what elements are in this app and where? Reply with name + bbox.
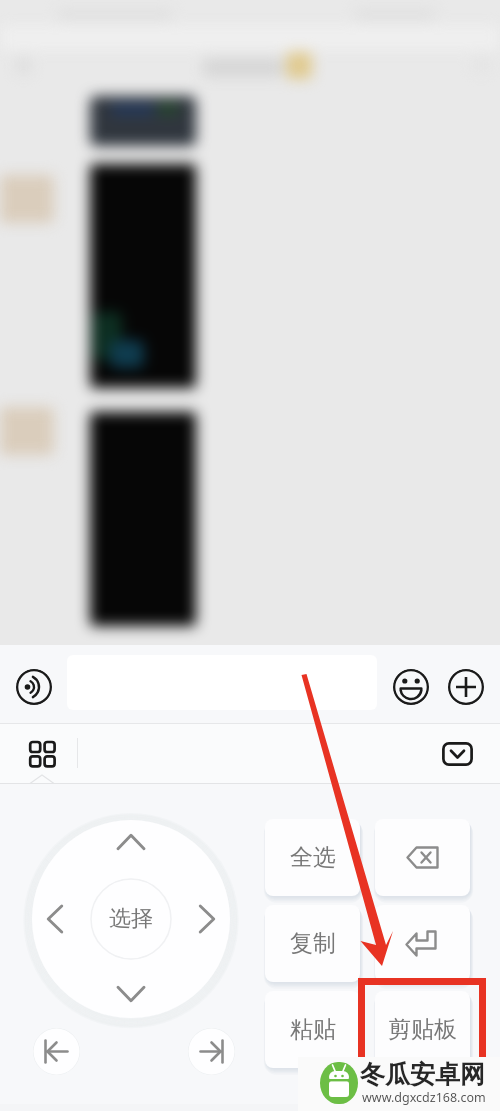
staticText: 全选 (290, 843, 336, 872)
button[interactable]: Jump to end (188, 1028, 235, 1075)
button[interactable] (375, 819, 470, 896)
button[interactable] (67, 655, 377, 710)
button[interactable]: More options (448, 669, 484, 705)
button[interactable]: Keyboard switch (24, 737, 61, 774)
button[interactable]: 复制 (265, 905, 360, 982)
staticText: 选择 (109, 905, 153, 933)
staticText: 剪贴板 (388, 1015, 457, 1044)
button[interactable]: Emoji (393, 669, 429, 705)
staticText: 粘贴 (290, 1015, 336, 1044)
button[interactable] (375, 905, 470, 982)
button[interactable]: Voice input (16, 669, 52, 705)
button[interactable]: 全选 (265, 819, 360, 896)
staticText: 冬瓜安卓网 (360, 1059, 485, 1090)
button[interactable]: Jump to start (33, 1028, 80, 1075)
staticText: www.dgxcdz168.com (362, 1089, 486, 1106)
button[interactable]: Hide keyboard (442, 742, 473, 766)
button[interactable]: 粘贴 (265, 991, 360, 1068)
staticText: 复制 (290, 929, 336, 958)
button[interactable]: 剪贴板 (375, 991, 470, 1068)
